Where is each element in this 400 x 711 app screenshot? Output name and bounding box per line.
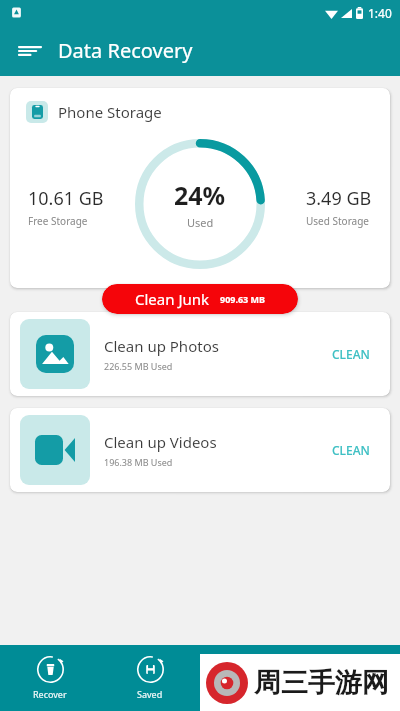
staticText: Clean up Videos (104, 432, 217, 452)
staticText: 196.38 MB Used (104, 456, 173, 468)
staticText: Saved (137, 688, 163, 700)
button[interactable]: CLEAN (318, 434, 384, 466)
staticText: Used Storage (306, 214, 369, 228)
staticText: More (339, 688, 362, 700)
staticText: 3.49 GB (306, 186, 372, 211)
staticText: 10.61 GB (28, 186, 104, 211)
button[interactable]: Clean Junk (102, 284, 298, 314)
staticText: Clean (238, 688, 262, 700)
staticText: Phone Storage (58, 102, 162, 122)
button[interactable]: Recover (0, 650, 100, 706)
staticText: Used (187, 215, 214, 230)
staticText: CLEAN (332, 346, 370, 362)
button[interactable]: Clean (200, 650, 300, 706)
staticText: 周三手游网 (254, 666, 389, 700)
staticText: 226.55 MB Used (104, 360, 173, 372)
button[interactable]: Clean up Videos (10, 408, 390, 492)
button[interactable]: Open navigation menu (10, 31, 50, 71)
staticText: Clean up Photos (104, 336, 219, 356)
staticText: Data Recovery (58, 37, 193, 64)
button[interactable]: Clean up Photos (10, 312, 390, 396)
staticText: 909.63 MB (220, 293, 266, 305)
staticText: Free Storage (28, 214, 88, 228)
staticText: CLEAN (332, 442, 370, 458)
staticText: 24% (174, 178, 226, 212)
button[interactable]: More (300, 650, 400, 706)
staticText: Clean Junk (135, 289, 210, 309)
button[interactable]: CLEAN (318, 338, 384, 370)
staticText: 1:40 (368, 5, 392, 21)
button[interactable]: Saved (100, 650, 200, 706)
staticText: Recover (33, 688, 67, 700)
